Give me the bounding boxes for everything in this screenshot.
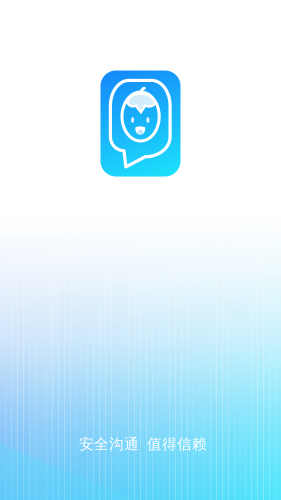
staticText: 安全沟通 值得信赖 (79, 435, 207, 453)
